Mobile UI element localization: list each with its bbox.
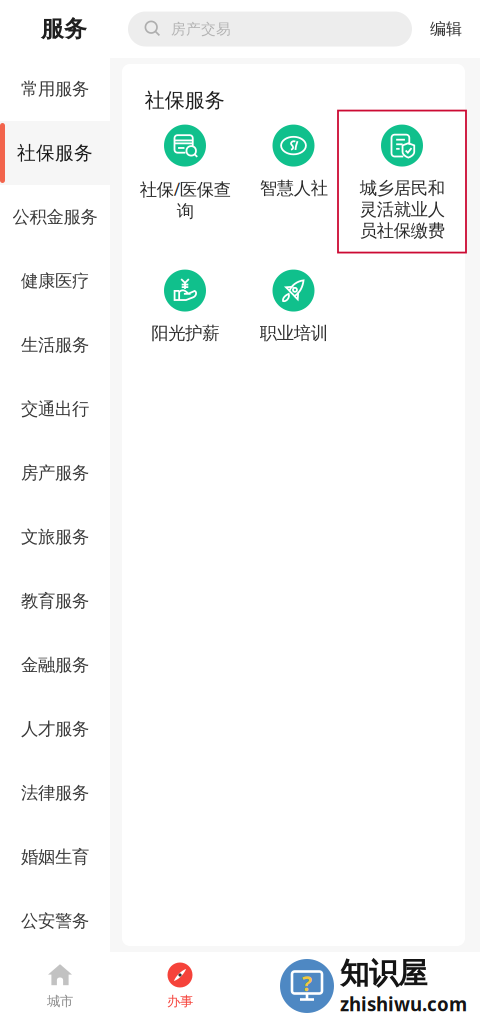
button[interactable]: 阳光护薪 [131,259,239,404]
staticText: 阳光护薪 [151,323,219,344]
staticText: 社保服务 [145,88,225,113]
button[interactable]: 社保服务 [0,121,110,185]
button[interactable]: 文旅服务 [0,505,110,569]
button[interactable]: 城乡居民和灵活就业人员社保缴费 [348,114,456,259]
staticText: 人才服务 [21,718,89,740]
button[interactable]: 金融服务 [0,633,110,697]
button[interactable]: 智慧人社 [239,114,348,259]
staticText: ? [302,969,312,997]
staticText: 金融服务 [21,654,89,676]
button[interactable]: 常用服务 [0,57,110,121]
button[interactable]: 办事 [120,952,240,1020]
staticText: 文旅服务 [21,526,89,548]
staticText: zhishiwu.com [340,992,467,1016]
staticText: 编辑 [430,19,462,39]
staticText: 法律服务 [21,782,89,804]
staticText: 城市 [47,993,73,1009]
staticText: 社保/医保查询 [139,178,230,222]
button[interactable]: 公积金服务 [0,185,110,249]
staticText: 办事 [167,993,193,1009]
staticText: 职业培训 [259,323,327,344]
button[interactable]: 社保/医保查询 [131,114,239,259]
button[interactable]: 城市 [0,952,120,1020]
staticText: 健康医疗 [21,270,89,292]
button[interactable]: 婚姻生育 [0,825,110,889]
button[interactable]: 人才服务 [0,697,110,761]
staticText: 服务 [41,15,87,43]
button[interactable]: 交通出行 [0,377,110,441]
button[interactable]: 教育服务 [0,569,110,633]
button[interactable]: 法律服务 [0,761,110,825]
staticText: 教育服务 [21,590,89,612]
staticText: 知识屋 [340,956,427,992]
button[interactable]: 健康医疗 [0,249,110,313]
button[interactable]: 职业培训 [239,259,348,404]
staticText: 智慧人社 [259,178,327,199]
staticText: 生活服务 [21,334,89,356]
button[interactable]: 编辑 [412,0,480,58]
staticText: 常用服务 [21,78,89,100]
staticText: 城乡居民和灵活就业人员社保缴费 [359,178,444,241]
button[interactable]: 房产服务 [0,441,110,505]
button[interactable]: 生活服务 [0,313,110,377]
staticText: 婚姻生育 [21,846,89,868]
staticText: 房产交易 [171,20,231,38]
staticText: 房产服务 [21,462,89,484]
button[interactable]: 公安警务 [0,889,110,953]
staticText: 公积金服务 [12,206,97,228]
staticText: 社保服务 [17,141,93,164]
staticText: 交通出行 [21,398,89,420]
staticText: 公安警务 [21,910,89,932]
